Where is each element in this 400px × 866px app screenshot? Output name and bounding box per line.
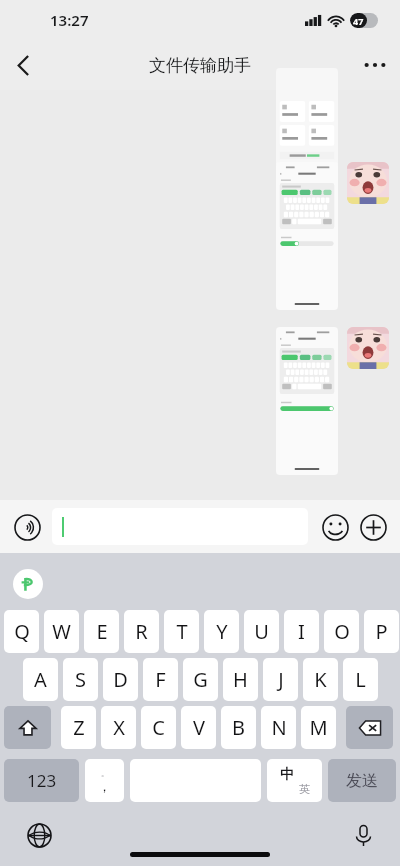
button[interactable]: W bbox=[44, 610, 79, 653]
button[interactable]: Change keyboard bbox=[22, 818, 56, 852]
staticText: K bbox=[314, 666, 327, 693]
staticText: 发送 bbox=[346, 771, 378, 791]
staticText: G bbox=[193, 666, 208, 693]
button[interactable]: V bbox=[181, 706, 216, 749]
button[interactable]: E bbox=[84, 610, 119, 653]
staticText: U bbox=[254, 618, 269, 645]
staticText: 123 bbox=[27, 769, 57, 792]
button[interactable]: Keyboard logo bbox=[13, 569, 43, 599]
button[interactable]: Q bbox=[4, 610, 39, 653]
staticText: E bbox=[96, 618, 108, 645]
staticText: S bbox=[75, 666, 86, 693]
staticText: Z bbox=[73, 714, 85, 741]
button[interactable]: Voice input bbox=[10, 510, 44, 544]
staticText: I bbox=[298, 618, 305, 645]
button[interactable]: 发送 bbox=[328, 759, 396, 802]
staticText: O bbox=[334, 618, 350, 645]
button[interactable]: 123 bbox=[4, 759, 79, 802]
button[interactable]: O bbox=[324, 610, 359, 653]
button[interactable]: C bbox=[141, 706, 176, 749]
button[interactable]: I bbox=[284, 610, 319, 653]
staticText: N bbox=[271, 714, 287, 741]
button[interactable]: M bbox=[301, 706, 336, 749]
button[interactable]: R bbox=[124, 610, 159, 653]
staticText: ， bbox=[98, 778, 111, 794]
button[interactable]: Switch Chinese English bbox=[267, 759, 322, 802]
staticText: Q bbox=[14, 618, 30, 645]
button[interactable]: B bbox=[221, 706, 256, 749]
button[interactable] bbox=[276, 162, 338, 310]
button[interactable]: K bbox=[303, 658, 338, 701]
staticText: T bbox=[176, 618, 188, 645]
button[interactable]: L bbox=[343, 658, 378, 701]
staticText: Y bbox=[216, 618, 228, 645]
staticText: J bbox=[278, 666, 284, 693]
button[interactable]: D bbox=[103, 658, 138, 701]
button[interactable]: 。 bbox=[85, 759, 124, 802]
button[interactable] bbox=[276, 68, 338, 178]
staticText: B bbox=[232, 714, 245, 741]
button[interactable]: Dictation bbox=[346, 818, 380, 852]
staticText: W bbox=[52, 618, 71, 645]
button[interactable]: Z bbox=[61, 706, 96, 749]
button[interactable] bbox=[276, 327, 338, 475]
button[interactable]: F bbox=[143, 658, 178, 701]
staticText: 。 bbox=[101, 768, 109, 778]
button[interactable]: N bbox=[261, 706, 296, 749]
staticText: 英 bbox=[299, 782, 310, 796]
button[interactable]: J bbox=[263, 658, 298, 701]
staticText: V bbox=[193, 714, 205, 741]
staticText: F bbox=[155, 666, 166, 693]
button[interactable]: P bbox=[364, 610, 399, 653]
staticText: P bbox=[375, 618, 388, 645]
staticText: 13:27 bbox=[50, 10, 89, 30]
staticText: R bbox=[135, 618, 148, 645]
button[interactable] bbox=[347, 162, 389, 204]
staticText: X bbox=[113, 714, 125, 741]
button[interactable]: Shift bbox=[4, 706, 51, 749]
button[interactable]: Back bbox=[0, 40, 46, 90]
button[interactable] bbox=[347, 327, 389, 369]
button[interactable]: H bbox=[223, 658, 258, 701]
button[interactable]: S bbox=[63, 658, 98, 701]
button[interactable]: U bbox=[244, 610, 279, 653]
staticText: D bbox=[113, 666, 128, 693]
staticText: 47 bbox=[353, 15, 364, 27]
button[interactable] bbox=[52, 508, 308, 545]
staticText: M bbox=[309, 714, 328, 741]
staticText: 文件传输助手 bbox=[149, 55, 251, 76]
button[interactable]: Y bbox=[204, 610, 239, 653]
staticText: H bbox=[233, 666, 248, 693]
button[interactable]: Backspace bbox=[346, 706, 393, 749]
button[interactable]: T bbox=[164, 610, 199, 653]
staticText: 中 bbox=[280, 766, 294, 784]
button[interactable]: More options bbox=[350, 40, 400, 90]
button[interactable]: More bbox=[356, 510, 390, 544]
button[interactable]: Emoji bbox=[318, 510, 352, 544]
button[interactable]: A bbox=[23, 658, 58, 701]
button[interactable]: G bbox=[183, 658, 218, 701]
staticText: A bbox=[34, 666, 47, 693]
button[interactable]: X bbox=[101, 706, 136, 749]
staticText: L bbox=[355, 666, 366, 693]
staticText: C bbox=[152, 714, 165, 741]
